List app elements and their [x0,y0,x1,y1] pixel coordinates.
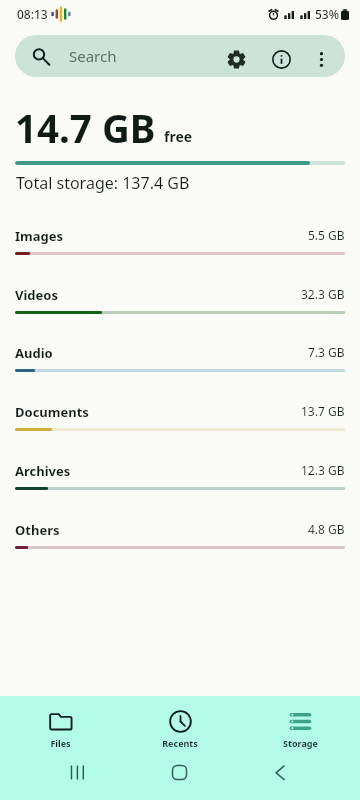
button[interactable]: Files [0,696,120,749]
staticText: free [164,127,193,146]
button[interactable]: Search [15,35,345,77]
staticText: Total storage: 137.4 GB [16,172,190,194]
button[interactable]: Recents [120,696,240,749]
staticText: Audio [15,344,53,362]
other: Recent apps [68,762,88,782]
button[interactable]: Audio [0,342,360,382]
staticText: Recents [162,737,198,749]
other: Search [31,46,51,66]
button[interactable]: Settings [220,43,252,75]
staticText: Images [15,227,64,245]
button[interactable]: Information [265,43,297,75]
staticText: 4.8 GB [308,521,345,537]
button[interactable]: Documents [0,401,360,441]
button[interactable]: Videos [0,284,360,324]
staticText: Search [69,46,117,66]
staticText: 5.5 GB [308,227,345,243]
button[interactable]: Images [0,225,360,265]
staticText: 7.3 GB [308,344,345,360]
button[interactable]: Storage [240,696,360,749]
staticText: Others [15,521,60,539]
staticText: 08:13 [17,6,48,22]
staticText: 53% [315,6,339,22]
other: Home [170,762,190,782]
staticText: Files [50,737,71,749]
staticText: 13.7 GB [301,403,345,419]
staticText: Documents [15,403,89,421]
staticText: 12.3 GB [301,462,345,478]
button[interactable]: More options [305,43,337,75]
button[interactable]: Others [0,519,360,559]
other: Back [271,762,291,782]
staticText: 14.7 GB [15,102,156,154]
staticText: Videos [15,286,58,304]
staticText: Storage [283,737,318,749]
staticText: Archives [15,462,71,480]
staticText: 32.3 GB [301,286,345,302]
button[interactable]: Archives [0,460,360,500]
